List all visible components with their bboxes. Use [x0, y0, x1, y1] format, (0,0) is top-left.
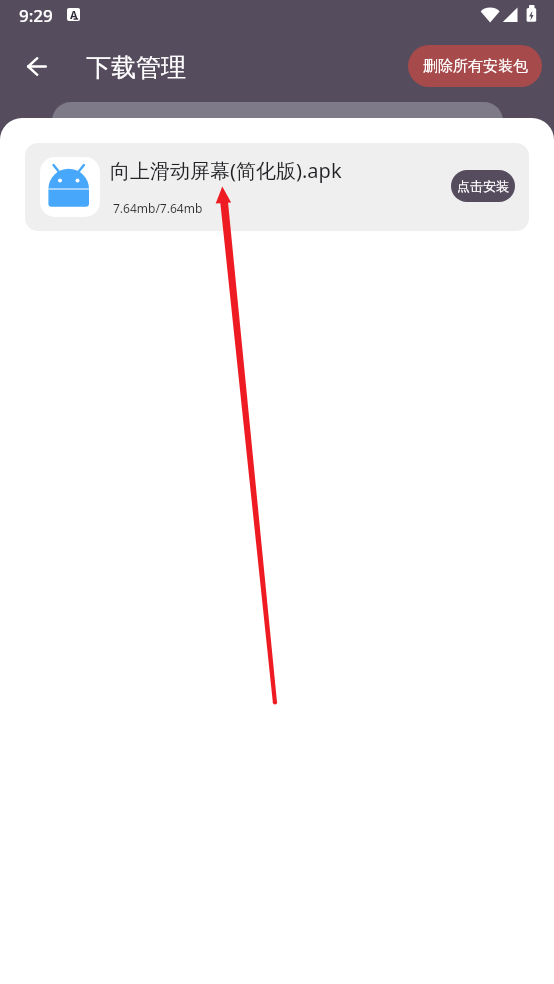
button[interactable]: 删除所有安装包	[408, 45, 542, 87]
staticText: A	[70, 8, 78, 20]
staticText: 下载管理	[86, 52, 186, 83]
button[interactable]: Back	[13, 43, 61, 91]
staticText: 删除所有安装包	[423, 57, 528, 76]
button[interactable]: 向上滑动屏幕(简化版).apk	[25, 143, 529, 231]
staticText: 7.64mb/7.64mb	[113, 200, 203, 216]
staticText: 9:29	[19, 4, 53, 27]
button[interactable]: 点击安装	[451, 170, 515, 202]
staticText: 点击安装	[457, 178, 509, 194]
staticText: 向上滑动屏幕(简化版).apk	[110, 157, 342, 184]
